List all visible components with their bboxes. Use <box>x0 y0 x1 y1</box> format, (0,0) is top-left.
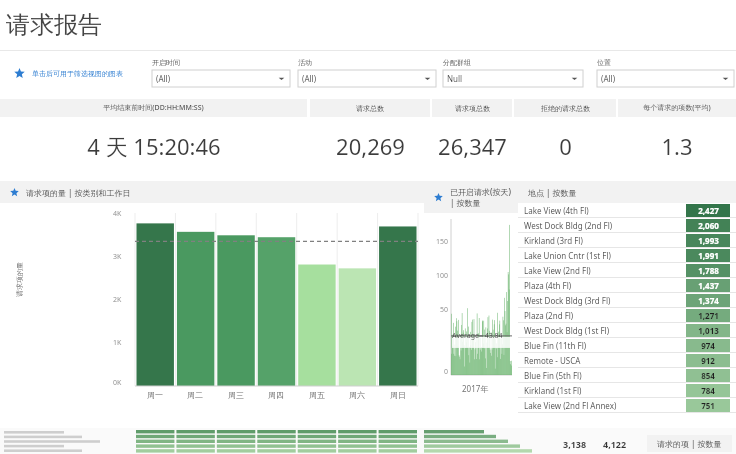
staticText: (All) <box>156 73 171 84</box>
button[interactable]: 已开启请求(按天) | 按数量 <box>424 181 518 213</box>
staticText: 0 <box>424 367 448 377</box>
button[interactable]: 请求项的量 | 按类别和工作日 <box>0 181 424 203</box>
staticText: 周日 <box>390 390 406 400</box>
button[interactable]: Kirkland (1st Fl) <box>518 383 736 398</box>
staticText: 请求项的量 <box>15 262 24 297</box>
staticText: 1,374 <box>698 295 719 306</box>
staticText: 1,993 <box>698 235 719 246</box>
button[interactable]: Null <box>443 70 583 87</box>
staticText: 20,269 <box>336 131 405 161</box>
staticText: 26,347 <box>438 131 507 161</box>
staticText: 平均结束前时间(DD:HH:MM:SS) <box>103 103 204 113</box>
button[interactable]: Kirkland (3rd Fl) <box>518 233 736 248</box>
button[interactable]: 请求总数 <box>310 99 430 117</box>
staticText: 开启时间 <box>152 58 180 67</box>
staticText: Null <box>447 73 463 84</box>
button[interactable]: 平均结束前时间(DD:HH:MM:SS) <box>0 99 307 117</box>
staticText: Lake View (4th Fl) <box>524 205 589 216</box>
staticText: 已开启请求(按天) | 按数量 <box>450 186 514 208</box>
staticText: 分配群组 <box>443 58 471 67</box>
staticText: 1K <box>113 338 122 348</box>
staticText: 912 <box>701 355 715 366</box>
staticText: West Dock Bldg (1st Fl) <box>524 325 610 336</box>
button[interactable]: (All) <box>152 70 290 87</box>
staticText: Lake Union Cntr (1st Fl) <box>524 250 611 261</box>
staticText: 3,138 <box>563 438 587 450</box>
staticText: (All) <box>302 73 317 84</box>
staticText: 0K <box>113 378 122 388</box>
staticText: Lake View (2nd Fl) <box>524 265 591 276</box>
staticText: Kirkland (1st Fl) <box>524 385 582 396</box>
button[interactable]: Lake View (2nd Fl Annex) <box>518 398 736 413</box>
button[interactable]: West Dock Bldg (2nd Fl) <box>518 218 736 233</box>
staticText: Blue Fin (11th Fl) <box>524 340 587 351</box>
staticText: Plaza (4th Fl) <box>524 280 572 291</box>
button[interactable]: West Dock Bldg (3rd Fl) <box>518 293 736 308</box>
staticText: 150 <box>424 237 448 247</box>
staticText: 974 <box>701 340 715 351</box>
staticText: 784 <box>701 385 715 396</box>
button[interactable]: 每个请求的项数(平均) <box>618 99 736 117</box>
button[interactable]: 地点 | 按数量 <box>518 181 736 203</box>
button[interactable]: Plaza (4th Fl) <box>518 278 736 293</box>
staticText: 2017年 <box>462 383 489 394</box>
other: Filter star <box>14 68 25 79</box>
staticText: 位置 <box>597 58 611 67</box>
staticText: 周四 <box>268 390 284 400</box>
button[interactable]: Filter star <box>14 68 123 79</box>
staticText: 4 天 15:20:46 <box>87 131 221 161</box>
staticText: 地点 | 按数量 <box>528 187 577 198</box>
staticText: 请求总数 <box>356 104 384 113</box>
staticText: 周一 <box>147 390 163 400</box>
button[interactable]: Plaza (2nd Fl) <box>518 308 736 323</box>
staticText: 1,013 <box>698 325 719 336</box>
staticText: 1,271 <box>698 310 719 321</box>
staticText: 4K <box>113 209 122 219</box>
staticText: Lake View (2nd Fl Annex) <box>524 400 617 411</box>
staticText: West Dock Bldg (2nd Fl) <box>524 220 613 231</box>
staticText: 请求项的量 | 按类别和工作日 <box>26 187 131 198</box>
button[interactable]: Lake Union Cntr (1st Fl) <box>518 248 736 263</box>
staticText: (All) <box>601 73 616 84</box>
staticText: Kirkland (3rd Fl) <box>524 235 583 246</box>
button[interactable]: (All) <box>597 70 734 87</box>
staticText: 请求报告 <box>6 10 102 40</box>
staticText: Plaza (2nd Fl) <box>524 310 574 321</box>
staticText: Average= 43.84 <box>452 331 503 341</box>
staticText: 4,122 <box>603 438 627 450</box>
staticText: 请求项总数 <box>455 104 490 113</box>
button[interactable]: 请求项总数 <box>432 99 512 117</box>
staticText: 周六 <box>349 390 365 400</box>
staticText: Remote - USCA <box>524 355 581 366</box>
staticText: 请求的项 | 按数量 <box>657 438 722 449</box>
staticText: 周五 <box>309 390 325 400</box>
button[interactable]: 请求的项 | 按数量 <box>657 438 722 449</box>
staticText: 2,060 <box>698 220 719 231</box>
staticText: 1,788 <box>698 265 719 276</box>
button[interactable]: (All) <box>298 70 436 87</box>
staticText: 周二 <box>187 390 203 400</box>
button[interactable]: 拒绝的请求总数 <box>514 99 616 117</box>
staticText: 751 <box>701 400 715 411</box>
staticText: 单击后可用于筛选视图的图表 <box>32 69 123 78</box>
staticText: 0 <box>559 131 572 161</box>
button[interactable]: Blue Fin (5th Fl) <box>518 368 736 383</box>
staticText: 100 <box>424 271 448 281</box>
staticText: 2,427 <box>698 205 719 216</box>
staticText: 1,437 <box>698 280 719 291</box>
staticText: Blue Fin (5th Fl) <box>524 370 582 381</box>
staticText: 拒绝的请求总数 <box>541 104 590 113</box>
button[interactable]: Lake View (2nd Fl) <box>518 263 736 278</box>
staticText: 50 <box>424 305 448 315</box>
button[interactable]: Blue Fin (11th Fl) <box>518 338 736 353</box>
button[interactable]: Lake View (4th Fl) <box>518 203 736 218</box>
staticText: 活动 <box>298 58 312 67</box>
staticText: 每个请求的项数(平均) <box>643 103 711 113</box>
staticText: 3K <box>113 252 122 262</box>
staticText: 2K <box>113 295 122 305</box>
staticText: 周三 <box>228 390 244 400</box>
staticText: West Dock Bldg (3rd Fl) <box>524 295 611 306</box>
staticText: 1.3 <box>661 131 693 161</box>
button[interactable]: Remote - USCA <box>518 353 736 368</box>
button[interactable]: West Dock Bldg (1st Fl) <box>518 323 736 338</box>
